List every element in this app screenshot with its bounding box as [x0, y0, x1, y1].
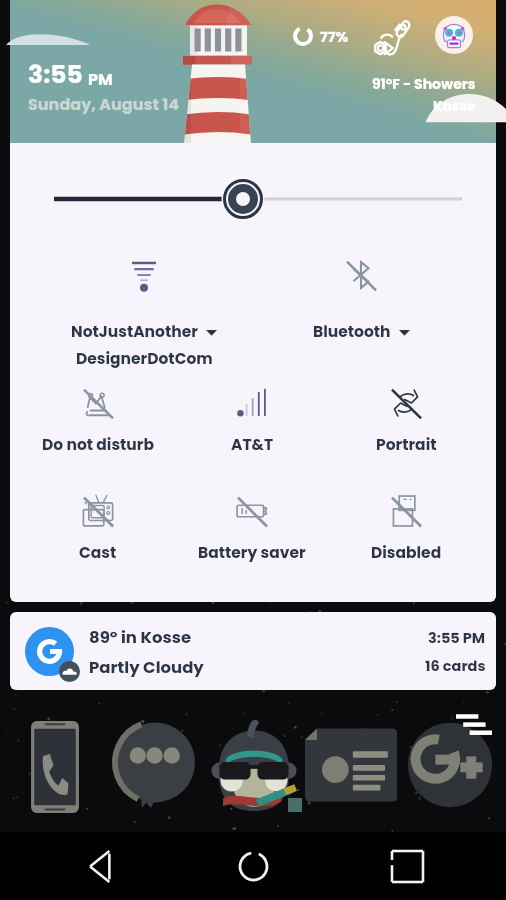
button[interactable]: Bluetooth: [266, 253, 456, 367]
button[interactable]: Cast: [10, 489, 193, 588]
button[interactable]: NotJustAnother: [49, 253, 239, 367]
staticText: Partly Cloudy: [89, 656, 204, 679]
staticText: Do not disturb: [42, 434, 154, 456]
button[interactable]: Home: [227, 840, 279, 892]
button[interactable]: Google Plus: [407, 722, 493, 808]
staticText: Bluetooth: [313, 321, 391, 343]
staticText: 16 cards: [425, 656, 486, 676]
button[interactable]: Back: [73, 840, 125, 892]
staticText: NotJustAnother: [71, 321, 198, 343]
button[interactable]: Messages: [112, 722, 198, 808]
button[interactable]: Mascot app: [211, 717, 297, 813]
button[interactable]: 89° in Kosse: [10, 612, 496, 690]
staticText: Cast: [79, 542, 117, 564]
button[interactable]: Recents: [381, 840, 433, 892]
staticText: 77%: [320, 27, 349, 47]
staticText: 91°F - Showers: [372, 74, 476, 94]
staticText: AT&T: [231, 434, 274, 456]
staticText: Battery saver: [198, 542, 306, 564]
staticText: Portrait: [376, 434, 437, 456]
staticText: Sunday, August 14: [28, 93, 180, 115]
button[interactable]: News: [305, 727, 397, 803]
staticText: 89° in Kosse: [89, 626, 192, 649]
button[interactable]: Avatar: [435, 16, 473, 54]
button[interactable]: [10, 143, 496, 215]
button[interactable]: Battery 77 percent: [293, 26, 313, 46]
staticText: 3:55: [28, 57, 83, 92]
button[interactable]: Phone: [29, 721, 81, 813]
button[interactable]: Portrait: [311, 381, 496, 480]
button[interactable]: Battery saver: [157, 489, 347, 588]
button[interactable]: Disabled: [311, 489, 496, 588]
button[interactable]: Key: [372, 17, 414, 59]
button[interactable]: Do not disturb: [10, 381, 193, 480]
staticText: Kosse: [433, 96, 476, 116]
staticText: PM: [88, 68, 113, 90]
button[interactable]: AT&T: [157, 381, 347, 480]
staticText: 3:55 PM: [428, 628, 486, 648]
staticText: DesignerDotCom: [76, 348, 213, 370]
staticText: Disabled: [371, 542, 442, 564]
